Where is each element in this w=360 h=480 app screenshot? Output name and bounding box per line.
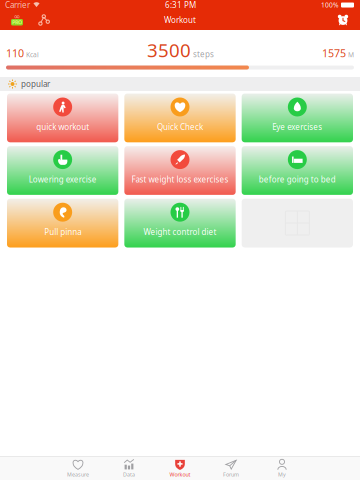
button[interactable]: Measure	[52, 457, 103, 480]
staticText: Workout	[169, 471, 190, 478]
staticText: PRO	[12, 19, 22, 26]
staticText: M	[346, 50, 354, 59]
staticText: Workout	[164, 15, 196, 25]
button[interactable]: Alarm	[334, 10, 352, 30]
button[interactable]: Quick Check	[124, 93, 236, 142]
staticText: 110	[6, 46, 24, 60]
button[interactable]: Forum	[205, 457, 256, 480]
staticText: before going to bed	[259, 174, 336, 185]
button[interactable]: Pull pinna	[7, 199, 118, 247]
button[interactable]: Data	[103, 457, 154, 480]
staticText: Data	[123, 471, 135, 478]
button[interactable]: before going to bed	[242, 146, 353, 195]
staticText: quick workout	[36, 121, 89, 132]
staticText: Lowering exercise	[29, 174, 97, 185]
staticText: popular	[21, 79, 50, 89]
button[interactable]: Share	[35, 10, 53, 30]
staticText: 3500	[147, 38, 191, 62]
button[interactable]: Eye exercises	[242, 93, 353, 142]
staticText: steps	[191, 49, 214, 59]
staticText: Kcal	[24, 50, 39, 59]
button[interactable]: My	[256, 457, 307, 480]
staticText: Quick Check	[157, 121, 203, 132]
staticText: Carrier	[5, 0, 30, 10]
staticText: 6:31 PM	[165, 0, 196, 10]
button[interactable]: Workout	[154, 457, 205, 480]
button[interactable]: quick workout	[7, 93, 118, 142]
staticText: Forum	[223, 471, 239, 478]
staticText: Eye exercises	[272, 121, 322, 132]
staticText: 1575	[322, 46, 346, 60]
button[interactable]: Fast weight loss exercises	[124, 146, 236, 195]
staticText: My	[278, 471, 286, 478]
staticText: Measure	[67, 471, 89, 478]
button[interactable]: Pro	[8, 10, 26, 30]
button[interactable]: Lowering exercise	[7, 146, 118, 195]
staticText: 100%	[321, 1, 339, 9]
staticText: Weight control diet	[143, 227, 216, 237]
staticText: Pull pinna	[44, 227, 81, 237]
button[interactable]: Weight control diet	[124, 199, 236, 247]
staticText: ∞	[13, 12, 20, 21]
staticText: Fast weight loss exercises	[131, 174, 228, 185]
